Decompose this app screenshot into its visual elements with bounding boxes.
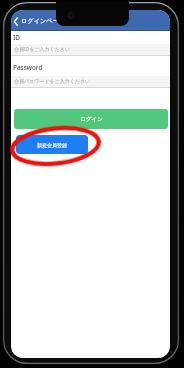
staticText: 新規会員登録: [37, 142, 67, 148]
staticText: 会員IDをご入力ください: [14, 46, 71, 53]
button[interactable]: 新規会員登録: [16, 135, 88, 154]
staticText: ログインページ: [21, 17, 66, 25]
button[interactable]: [11, 10, 21, 31]
staticText: 会員パスワードをご入力ください: [14, 78, 91, 84]
staticText: ID: [13, 33, 20, 42]
button[interactable]: ログイン: [14, 109, 168, 129]
staticText: Password: [13, 63, 43, 72]
staticText: ログイン: [80, 116, 103, 123]
button[interactable]: 会員IDをご入力ください: [11, 44, 170, 55]
button[interactable]: 会員パスワードをご入力ください: [11, 76, 170, 87]
